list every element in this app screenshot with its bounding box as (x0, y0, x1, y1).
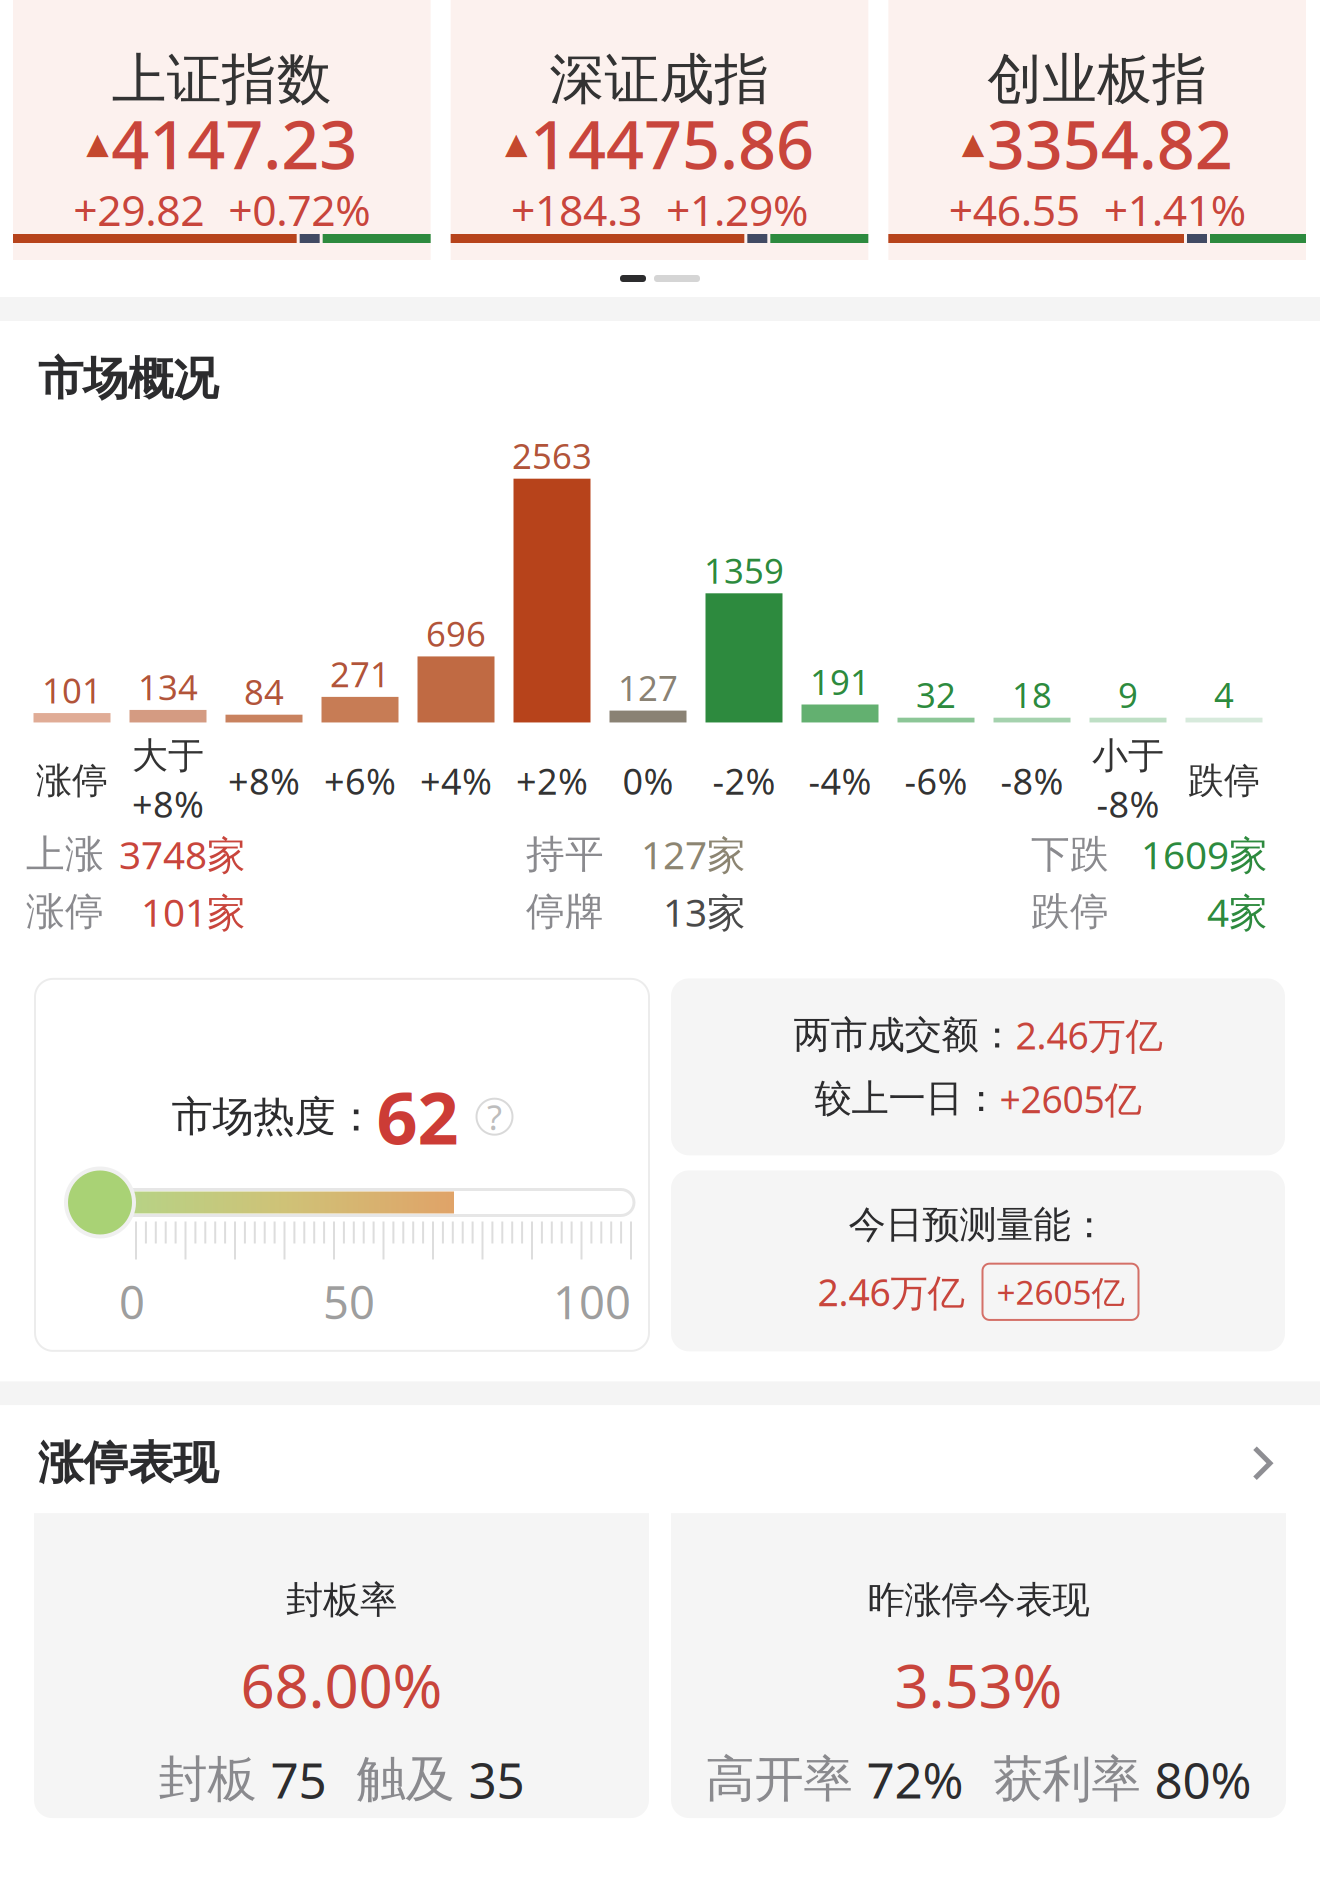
staticText: -2% (712, 757, 775, 805)
staticText: 191 (810, 658, 870, 704)
staticText: 3.53% (894, 1645, 1062, 1725)
staticText: 创业板指 (987, 46, 1207, 113)
staticText: -8% (1000, 757, 1063, 805)
staticText: ▲ (86, 127, 109, 160)
staticText: 0 (119, 1271, 145, 1332)
staticText: 134 (138, 664, 198, 710)
staticText: 封板 (158, 1749, 256, 1810)
button[interactable]: 封板率 (34, 1513, 649, 1818)
staticText: 涨停 (36, 759, 108, 803)
staticText: +46.55 (949, 181, 1080, 238)
staticText: 跌停 (1031, 888, 1109, 935)
staticText: ▲ (962, 127, 985, 160)
staticText: 今日预测量能： (848, 1202, 1107, 1248)
staticText: 1609家 (1141, 829, 1268, 880)
staticText: 0% (622, 757, 673, 805)
staticText: 4家 (1207, 886, 1268, 937)
staticText: ? (487, 1094, 502, 1140)
staticText: 101家 (141, 886, 246, 937)
staticText: 下跌 (1031, 831, 1109, 878)
staticText: 涨停 (26, 888, 104, 935)
staticText: 127家 (641, 829, 746, 880)
staticText: 触及 (356, 1749, 454, 1810)
staticText: +2% (516, 757, 588, 805)
staticText: 14475.86 (530, 99, 814, 187)
staticText: 127 (618, 665, 678, 711)
staticText: 72% (866, 1747, 963, 1812)
staticText: 9 (1118, 672, 1138, 718)
staticText: 13家 (663, 886, 746, 937)
staticText: 深证成指 (549, 46, 769, 113)
staticText: 3748家 (119, 829, 246, 880)
staticText: +8% (228, 757, 300, 805)
staticText: +2605亿 (996, 1270, 1124, 1314)
staticText: 100 (553, 1271, 631, 1332)
staticText: 持平 (526, 831, 604, 878)
staticText: +6% (324, 757, 396, 805)
staticText: 两市成交额： (793, 1012, 1015, 1058)
button[interactable]: 深证成指 (451, 0, 868, 260)
staticText: 32 (916, 672, 956, 718)
staticText: 4 (1214, 672, 1234, 718)
staticText: +0.72% (228, 181, 370, 238)
staticText: 市场热度： (171, 1091, 376, 1142)
button[interactable]: 涨停表现 (0, 1405, 1320, 1513)
staticText: 跌停 (1188, 759, 1260, 803)
staticText: +1.29% (666, 181, 808, 238)
staticText: -8% (1096, 780, 1159, 828)
staticText: 4147.23 (111, 99, 357, 187)
staticText: 2563 (512, 433, 592, 479)
staticText: 696 (426, 610, 486, 656)
staticText: 2.46万亿 (817, 1267, 964, 1317)
staticText: 18 (1012, 672, 1052, 718)
staticText: 75 (270, 1747, 326, 1812)
staticText: -4% (808, 757, 871, 805)
staticText: +4% (420, 757, 492, 805)
staticText: +8% (132, 780, 204, 828)
staticText: 101 (42, 667, 102, 713)
button[interactable]: 上证指数 (13, 0, 431, 260)
staticText: 获利率 (993, 1749, 1140, 1810)
staticText: 68.00% (240, 1645, 442, 1725)
staticText: 271 (330, 651, 390, 697)
staticText: +29.82 (73, 181, 204, 238)
staticText: 较上一日： (814, 1076, 999, 1122)
staticText: +1.41% (1104, 181, 1246, 238)
button[interactable]: 昨涨停今表现 (671, 1513, 1286, 1818)
staticText: 涨停表现 (38, 1435, 218, 1491)
staticText: ▲ (505, 127, 528, 160)
staticText: 停牌 (526, 888, 604, 935)
staticText: 上涨 (26, 831, 104, 878)
staticText: 封板率 (286, 1577, 397, 1623)
staticText: 小于 (1092, 734, 1164, 778)
staticText: -6% (904, 757, 967, 805)
button[interactable]: 创业板指 (888, 0, 1306, 260)
staticText: 3354.82 (987, 99, 1233, 187)
staticText: 市场概况 (38, 351, 218, 407)
staticText: 35 (468, 1747, 524, 1812)
staticText: 50 (323, 1271, 375, 1332)
staticText: +184.3 (511, 181, 642, 238)
staticText: 2.46万亿 (1015, 1010, 1162, 1060)
staticText: 大于 (132, 734, 204, 778)
staticText: 1359 (704, 547, 784, 593)
staticText: 84 (244, 669, 284, 715)
staticText: 62 (376, 1069, 458, 1164)
staticText: 昨涨停今表现 (867, 1577, 1089, 1623)
staticText: 上证指数 (112, 46, 332, 113)
staticText: +2605亿 (999, 1074, 1141, 1123)
staticText: 80% (1154, 1747, 1251, 1812)
staticText: 高开率 (705, 1749, 852, 1810)
